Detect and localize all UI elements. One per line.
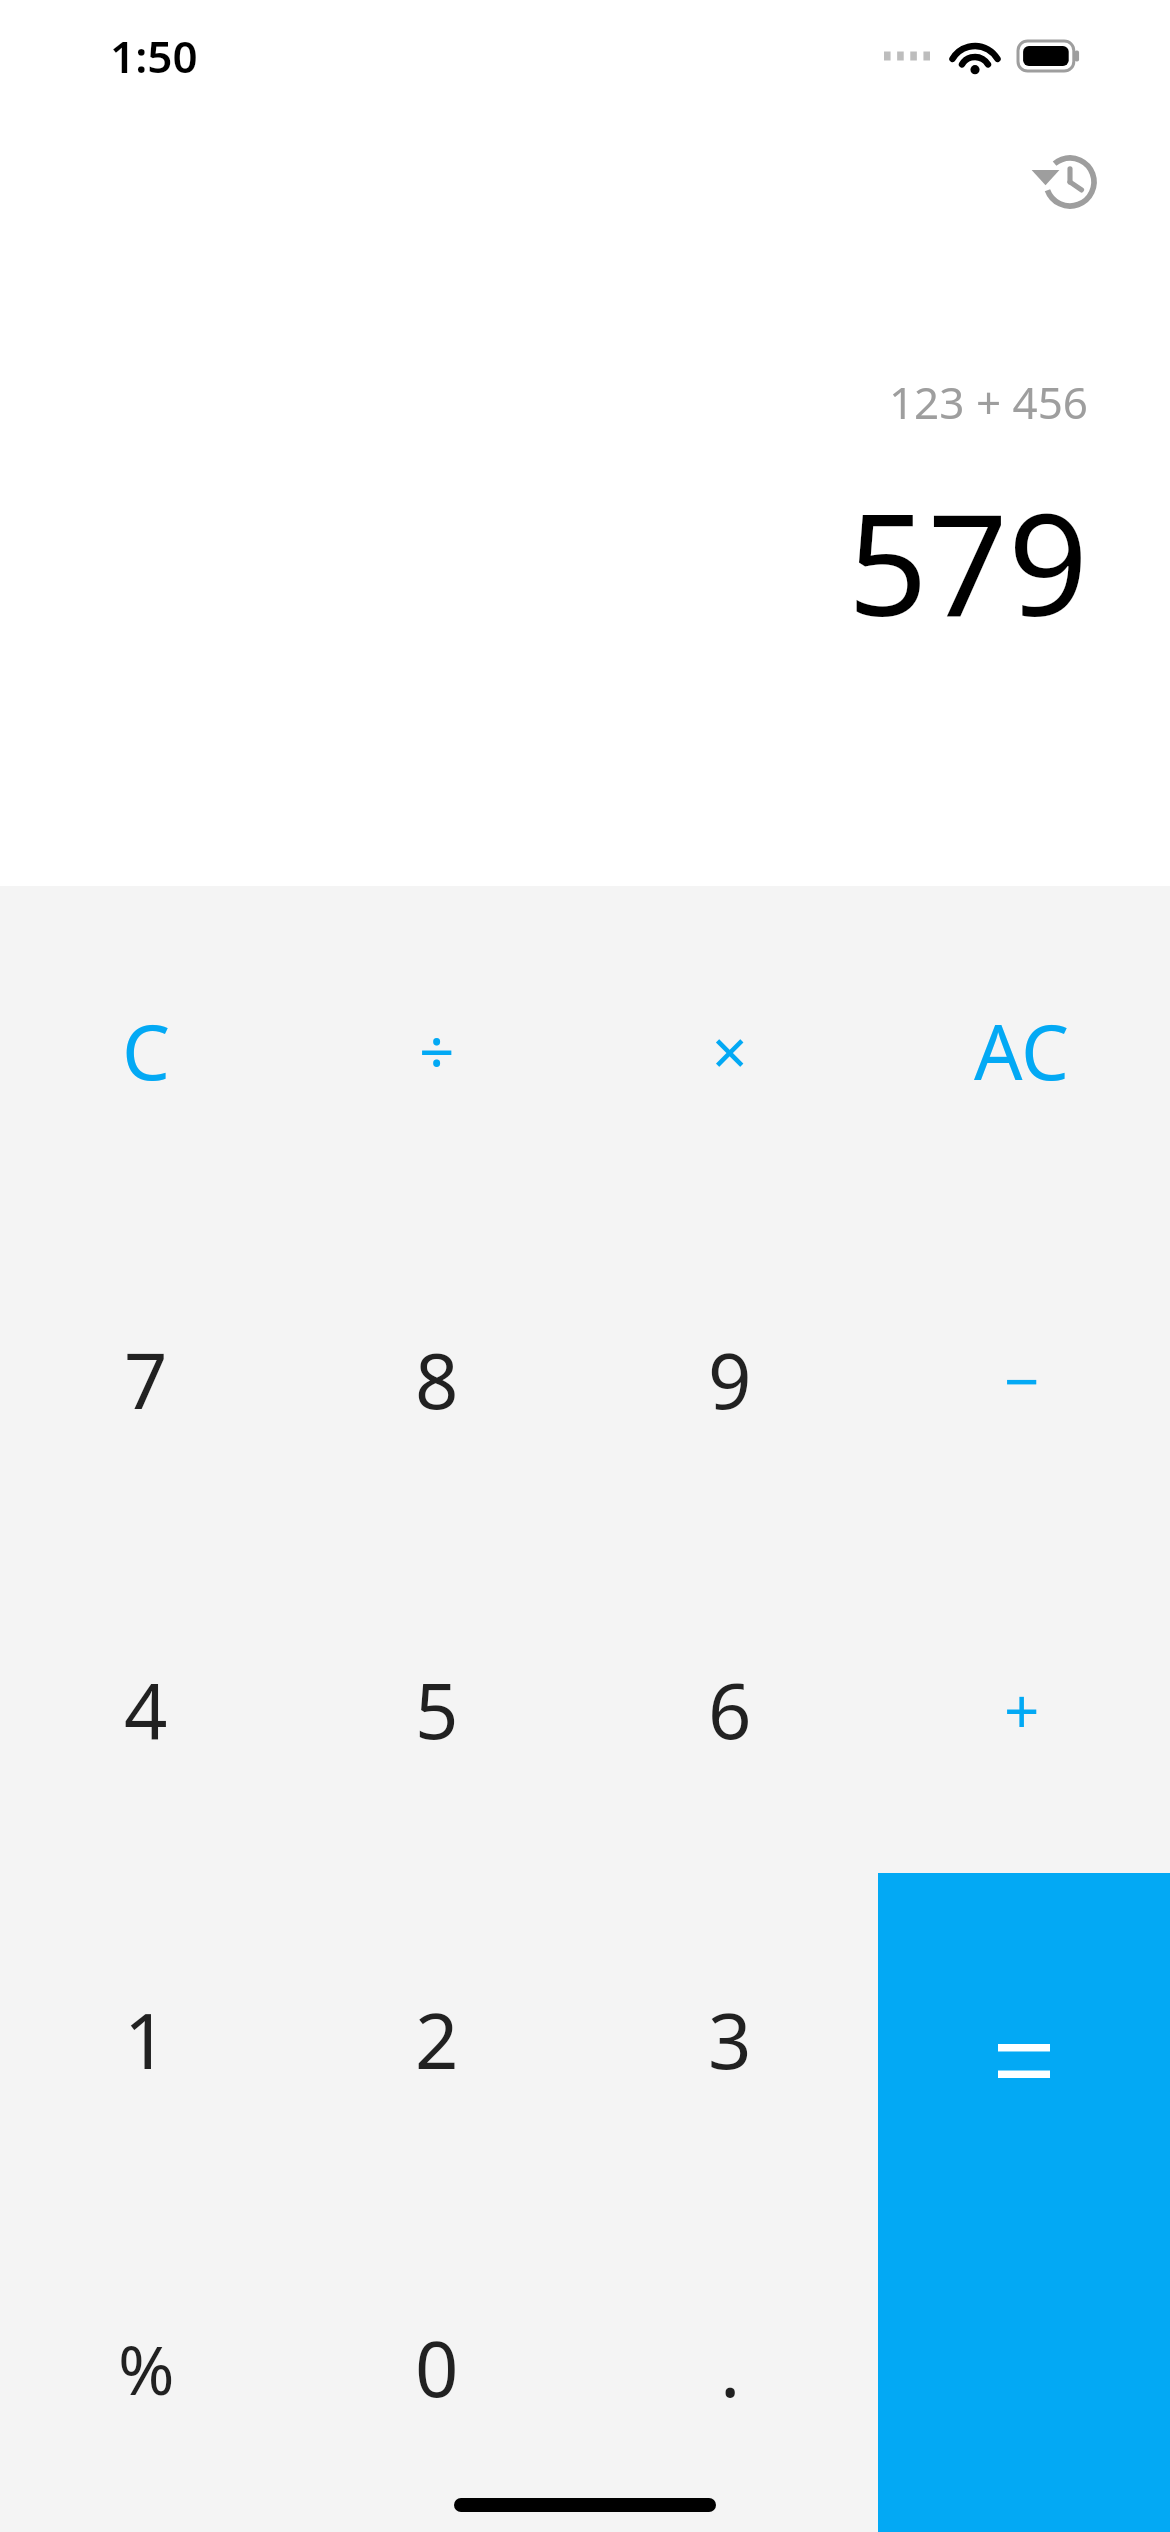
staticText: 4 xyxy=(124,1658,168,1762)
staticText: % xyxy=(118,2322,175,2415)
staticText: 9 xyxy=(708,1328,752,1432)
staticText: 7 xyxy=(124,1328,168,1432)
staticText: 5 xyxy=(415,1658,459,1762)
button[interactable]: . xyxy=(584,2204,876,2532)
button[interactable]: 5 xyxy=(291,1546,583,1874)
button[interactable]: + xyxy=(876,1546,1168,1874)
staticText: C xyxy=(122,999,171,1103)
staticText: 8 xyxy=(415,1328,459,1432)
button[interactable]: 6 xyxy=(584,1546,876,1874)
staticText: ÷ xyxy=(419,1009,455,1093)
staticText: × xyxy=(712,1009,748,1093)
staticText: 123 + 456 xyxy=(888,372,1088,432)
staticText: 1:50 xyxy=(110,26,198,86)
staticText: + xyxy=(1004,1668,1040,1752)
staticText: 1 xyxy=(124,1988,168,2092)
button[interactable]: C xyxy=(0,887,292,1215)
staticText: 6 xyxy=(708,1658,752,1762)
button[interactable]: 8 xyxy=(291,1216,583,1544)
button[interactable]: − xyxy=(876,1216,1168,1544)
button[interactable]: 3 xyxy=(584,1876,876,2204)
staticText: . xyxy=(720,2316,741,2420)
button[interactable]: AC xyxy=(876,887,1168,1215)
button[interactable]: % xyxy=(0,2204,292,2532)
button[interactable]: History xyxy=(1028,140,1112,224)
button[interactable]: Equals xyxy=(878,1873,1170,2532)
staticText: AC xyxy=(974,999,1070,1103)
button[interactable]: 1 xyxy=(0,1876,292,2204)
staticText: 0 xyxy=(415,2316,459,2420)
button[interactable]: 7 xyxy=(0,1216,292,1544)
staticText: − xyxy=(1004,1338,1040,1422)
button[interactable]: × xyxy=(584,887,876,1215)
staticText: 579 xyxy=(847,466,1088,657)
staticText: 3 xyxy=(708,1988,752,2092)
staticText: 2 xyxy=(415,1988,459,2092)
button[interactable]: ÷ xyxy=(291,887,583,1215)
button[interactable]: 9 xyxy=(584,1216,876,1544)
button[interactable]: 4 xyxy=(0,1546,292,1874)
button[interactable]: 2 xyxy=(291,1876,583,2204)
button[interactable]: 0 xyxy=(291,2204,583,2532)
